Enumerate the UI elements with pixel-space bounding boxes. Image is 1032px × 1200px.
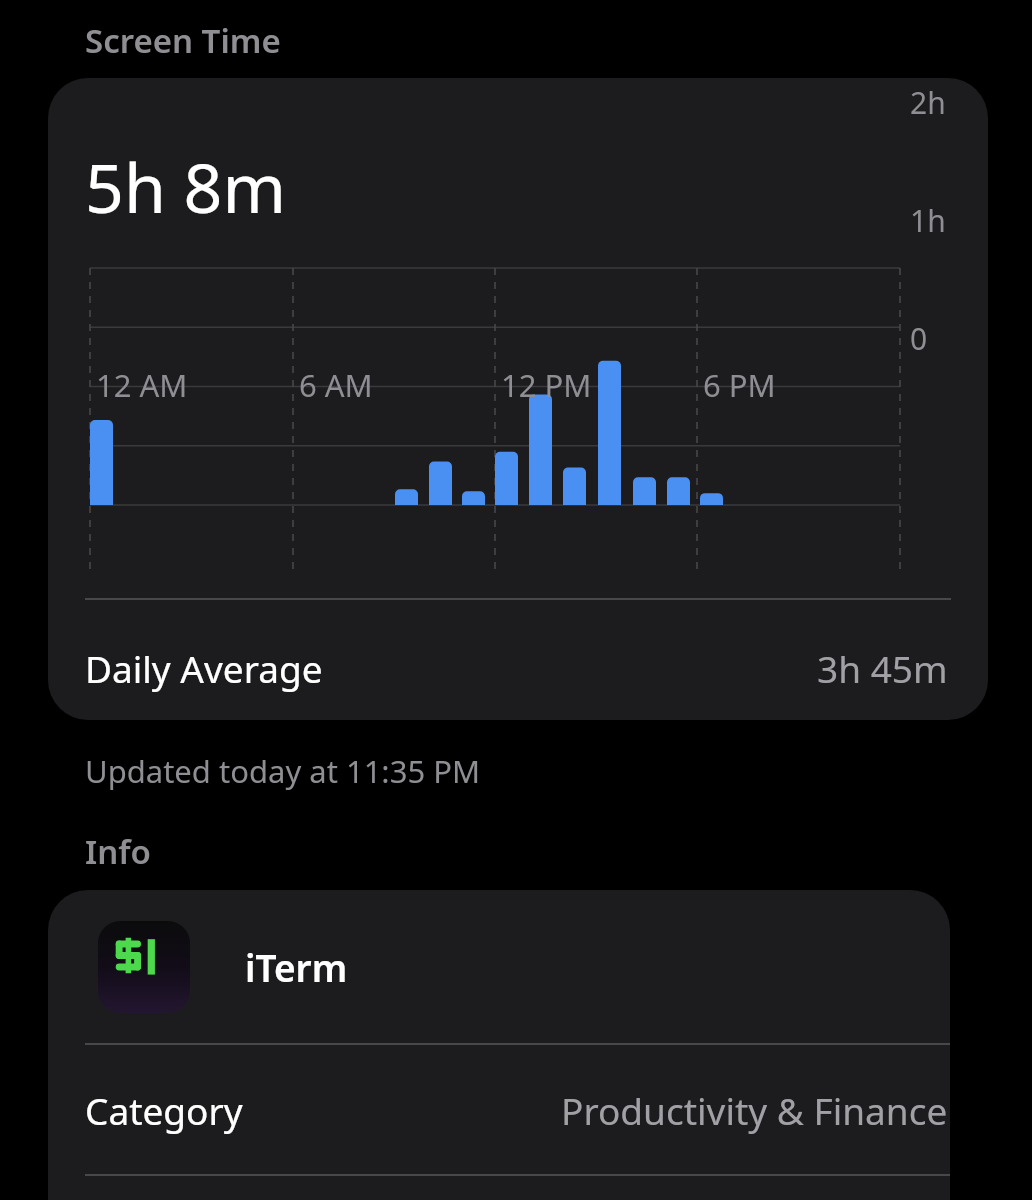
button[interactable]: Category	[48, 1045, 950, 1174]
staticText: 12 AM	[96, 364, 188, 406]
staticText: 5h 8m	[85, 140, 287, 233]
button[interactable]: 5h 8m	[48, 78, 988, 720]
staticText: 1h	[910, 200, 946, 241]
button[interactable]: iTerm	[48, 890, 950, 1043]
staticText: 6 PM	[703, 364, 776, 406]
staticText: Info	[85, 829, 151, 874]
staticText: 0	[910, 318, 928, 359]
staticText: iTerm	[245, 942, 348, 992]
staticText: Productivity & Finance	[561, 1085, 948, 1135]
staticText: 6 AM	[299, 364, 373, 406]
staticText: 2h	[910, 82, 946, 123]
staticText: Screen Time	[85, 18, 281, 63]
staticText: Updated today at 11:35 PM	[85, 750, 481, 792]
staticText: Daily Average	[85, 643, 323, 693]
staticText: 3h 45m	[817, 643, 948, 693]
staticText: Category	[85, 1085, 243, 1135]
staticText: 12 PM	[501, 364, 592, 406]
button[interactable]: Daily Average	[48, 618, 988, 718]
